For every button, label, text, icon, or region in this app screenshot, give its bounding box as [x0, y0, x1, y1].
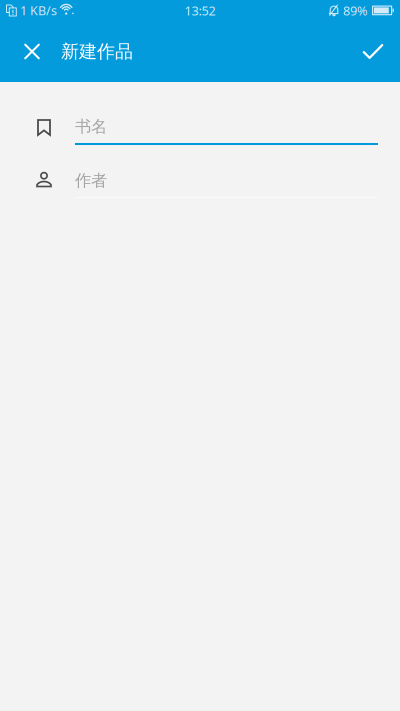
- staticText: 13:52: [184, 2, 215, 19]
- staticText: 书名: [75, 116, 107, 137]
- button[interactable]: 作者: [0, 169, 400, 198]
- staticText: 新建作品: [61, 40, 133, 63]
- button[interactable]: Close: [12, 26, 52, 77]
- staticText: 1 KB/s: [20, 2, 57, 19]
- staticText: 89%: [343, 2, 368, 19]
- staticText: 作者: [75, 170, 107, 191]
- button[interactable]: Save: [351, 26, 395, 77]
- button[interactable]: 书名: [0, 114, 400, 145]
